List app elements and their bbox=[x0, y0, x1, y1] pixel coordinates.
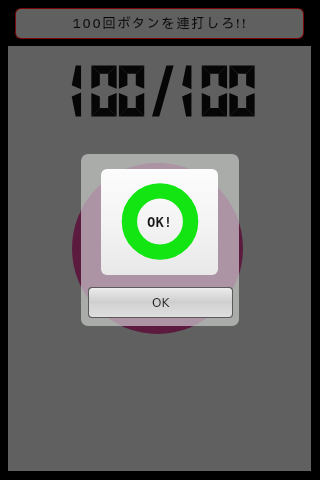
button[interactable]: OK bbox=[89, 288, 232, 317]
staticText: OK! bbox=[147, 214, 173, 230]
button[interactable]: 100回ボタンを連打しろ!! bbox=[16, 9, 303, 38]
staticText: OK bbox=[152, 296, 170, 310]
staticText: 100回ボタンを連打しろ!! bbox=[72, 14, 248, 33]
